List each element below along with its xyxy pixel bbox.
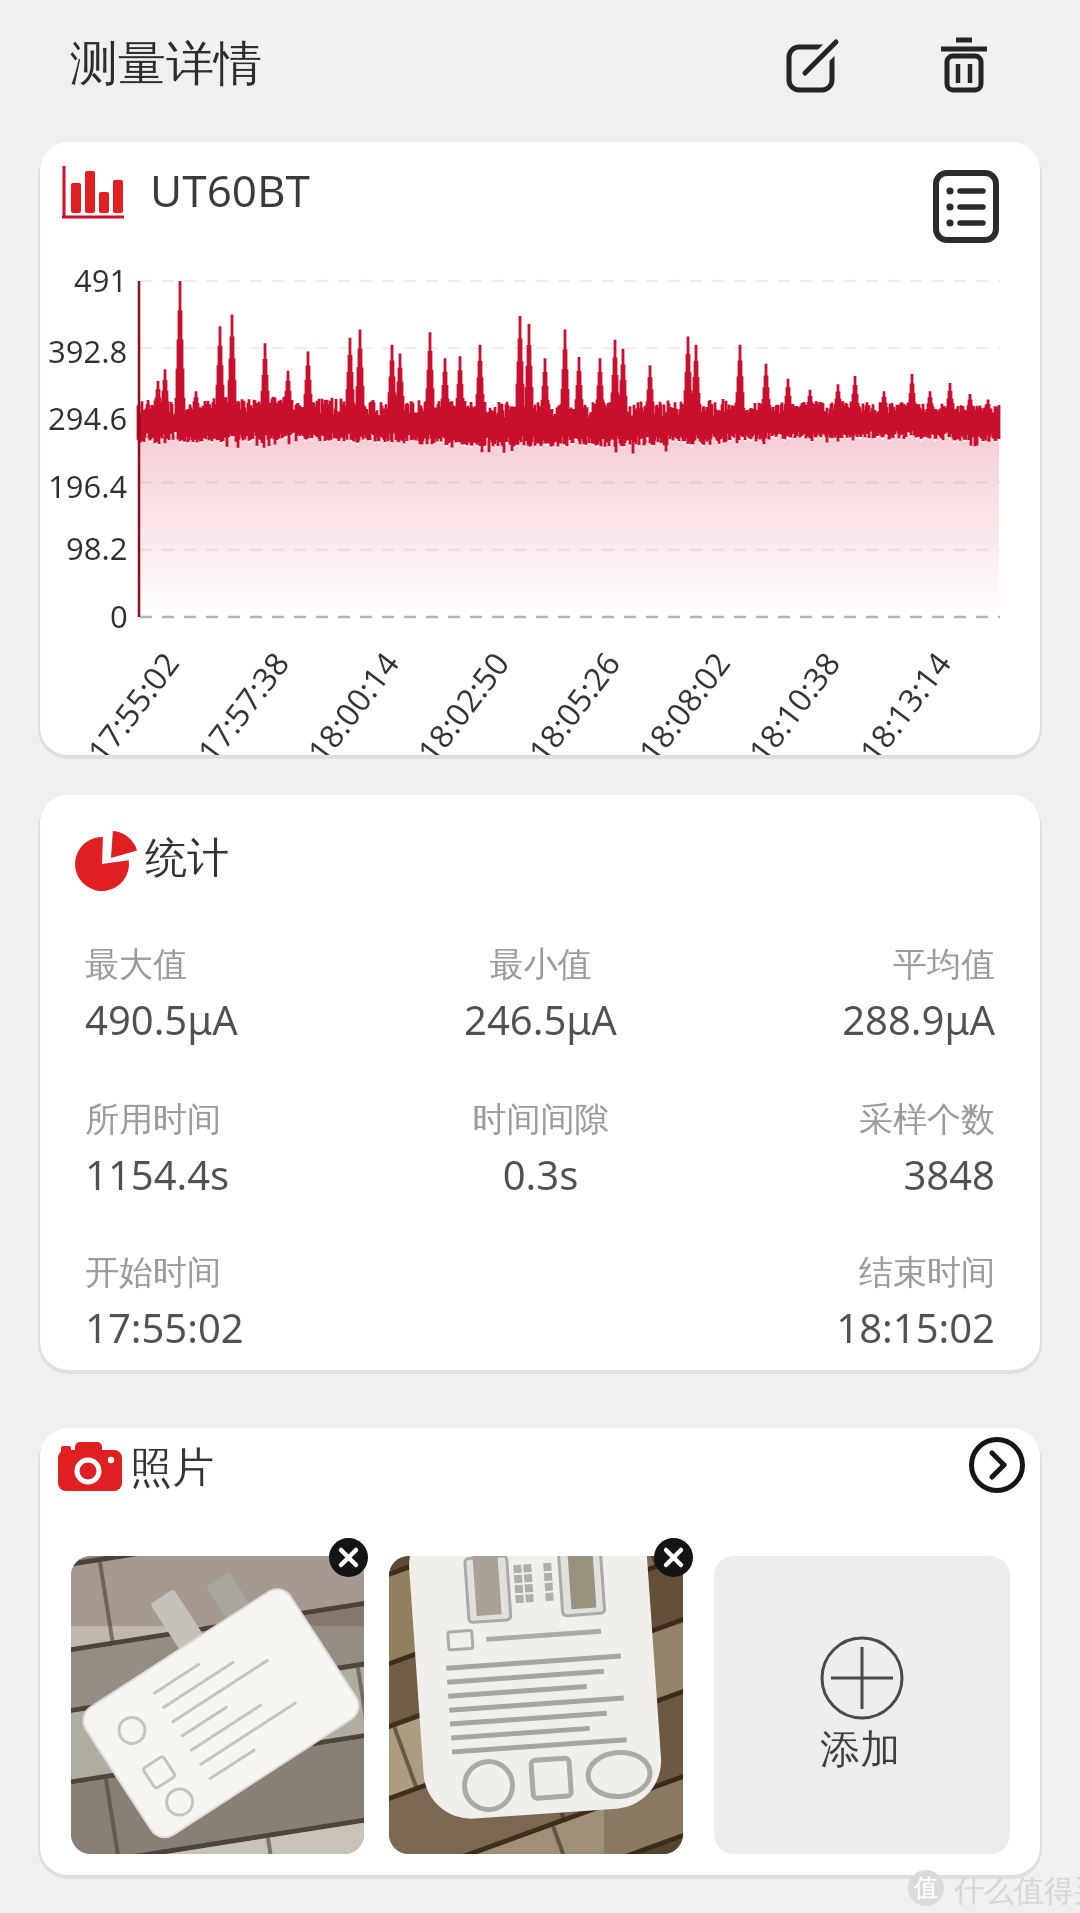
staticText: 平均值	[692, 943, 995, 986]
staticText: 3848	[692, 1147, 995, 1201]
staticText: 18:00:14	[297, 643, 402, 755]
staticText: 17:55:02	[85, 1300, 389, 1354]
staticText: 18:13:14	[849, 643, 954, 755]
staticText: 392.8	[48, 330, 128, 372]
button[interactable]	[776, 26, 852, 102]
staticText: 采样个数	[692, 1098, 995, 1141]
staticText: 照片	[130, 1442, 214, 1495]
staticText: 0	[110, 595, 128, 637]
staticText: 17:55:02	[77, 643, 182, 755]
staticText: 统计	[145, 832, 229, 885]
staticText: 18:05:26	[518, 643, 623, 755]
staticText: 17:57:38	[187, 643, 292, 755]
button[interactable]	[654, 1538, 693, 1577]
button[interactable]	[71, 1556, 364, 1854]
button[interactable]	[389, 1556, 683, 1854]
staticText: 490.5μA	[85, 992, 389, 1046]
staticText: 测量详情	[70, 34, 262, 94]
staticText: 246.5μA	[389, 992, 692, 1046]
staticText: 18:15:02	[692, 1300, 995, 1354]
staticText: UT60BT	[150, 160, 311, 220]
staticText: 时间间隙	[389, 1098, 692, 1141]
staticText: 结束时间	[692, 1251, 995, 1294]
button[interactable]	[967, 1435, 1027, 1495]
staticText: 1154.4s	[85, 1147, 389, 1201]
staticText: 0.3s	[389, 1147, 692, 1201]
staticText: 所用时间	[85, 1098, 389, 1141]
staticText: 491	[74, 259, 128, 301]
staticText: 18:10:38	[738, 643, 843, 755]
staticText: 最大值	[85, 943, 389, 986]
button[interactable]	[926, 166, 1006, 246]
button[interactable]	[926, 26, 1002, 102]
button[interactable]: 添加	[714, 1556, 1010, 1854]
staticText: 值	[914, 1873, 938, 1903]
staticText: 98.2	[66, 527, 128, 569]
staticText: 288.9μA	[692, 992, 995, 1046]
staticText: 196.4	[48, 465, 128, 507]
staticText: 开始时间	[85, 1251, 389, 1294]
staticText: 294.6	[48, 397, 128, 439]
staticText: 什么值得买	[954, 1872, 1080, 1910]
staticText: 添加	[820, 1724, 900, 1774]
staticText: 18:08:02	[628, 643, 733, 755]
staticText: 18:02:50	[407, 643, 512, 755]
staticText: 最小值	[389, 943, 692, 986]
button[interactable]	[329, 1538, 368, 1577]
